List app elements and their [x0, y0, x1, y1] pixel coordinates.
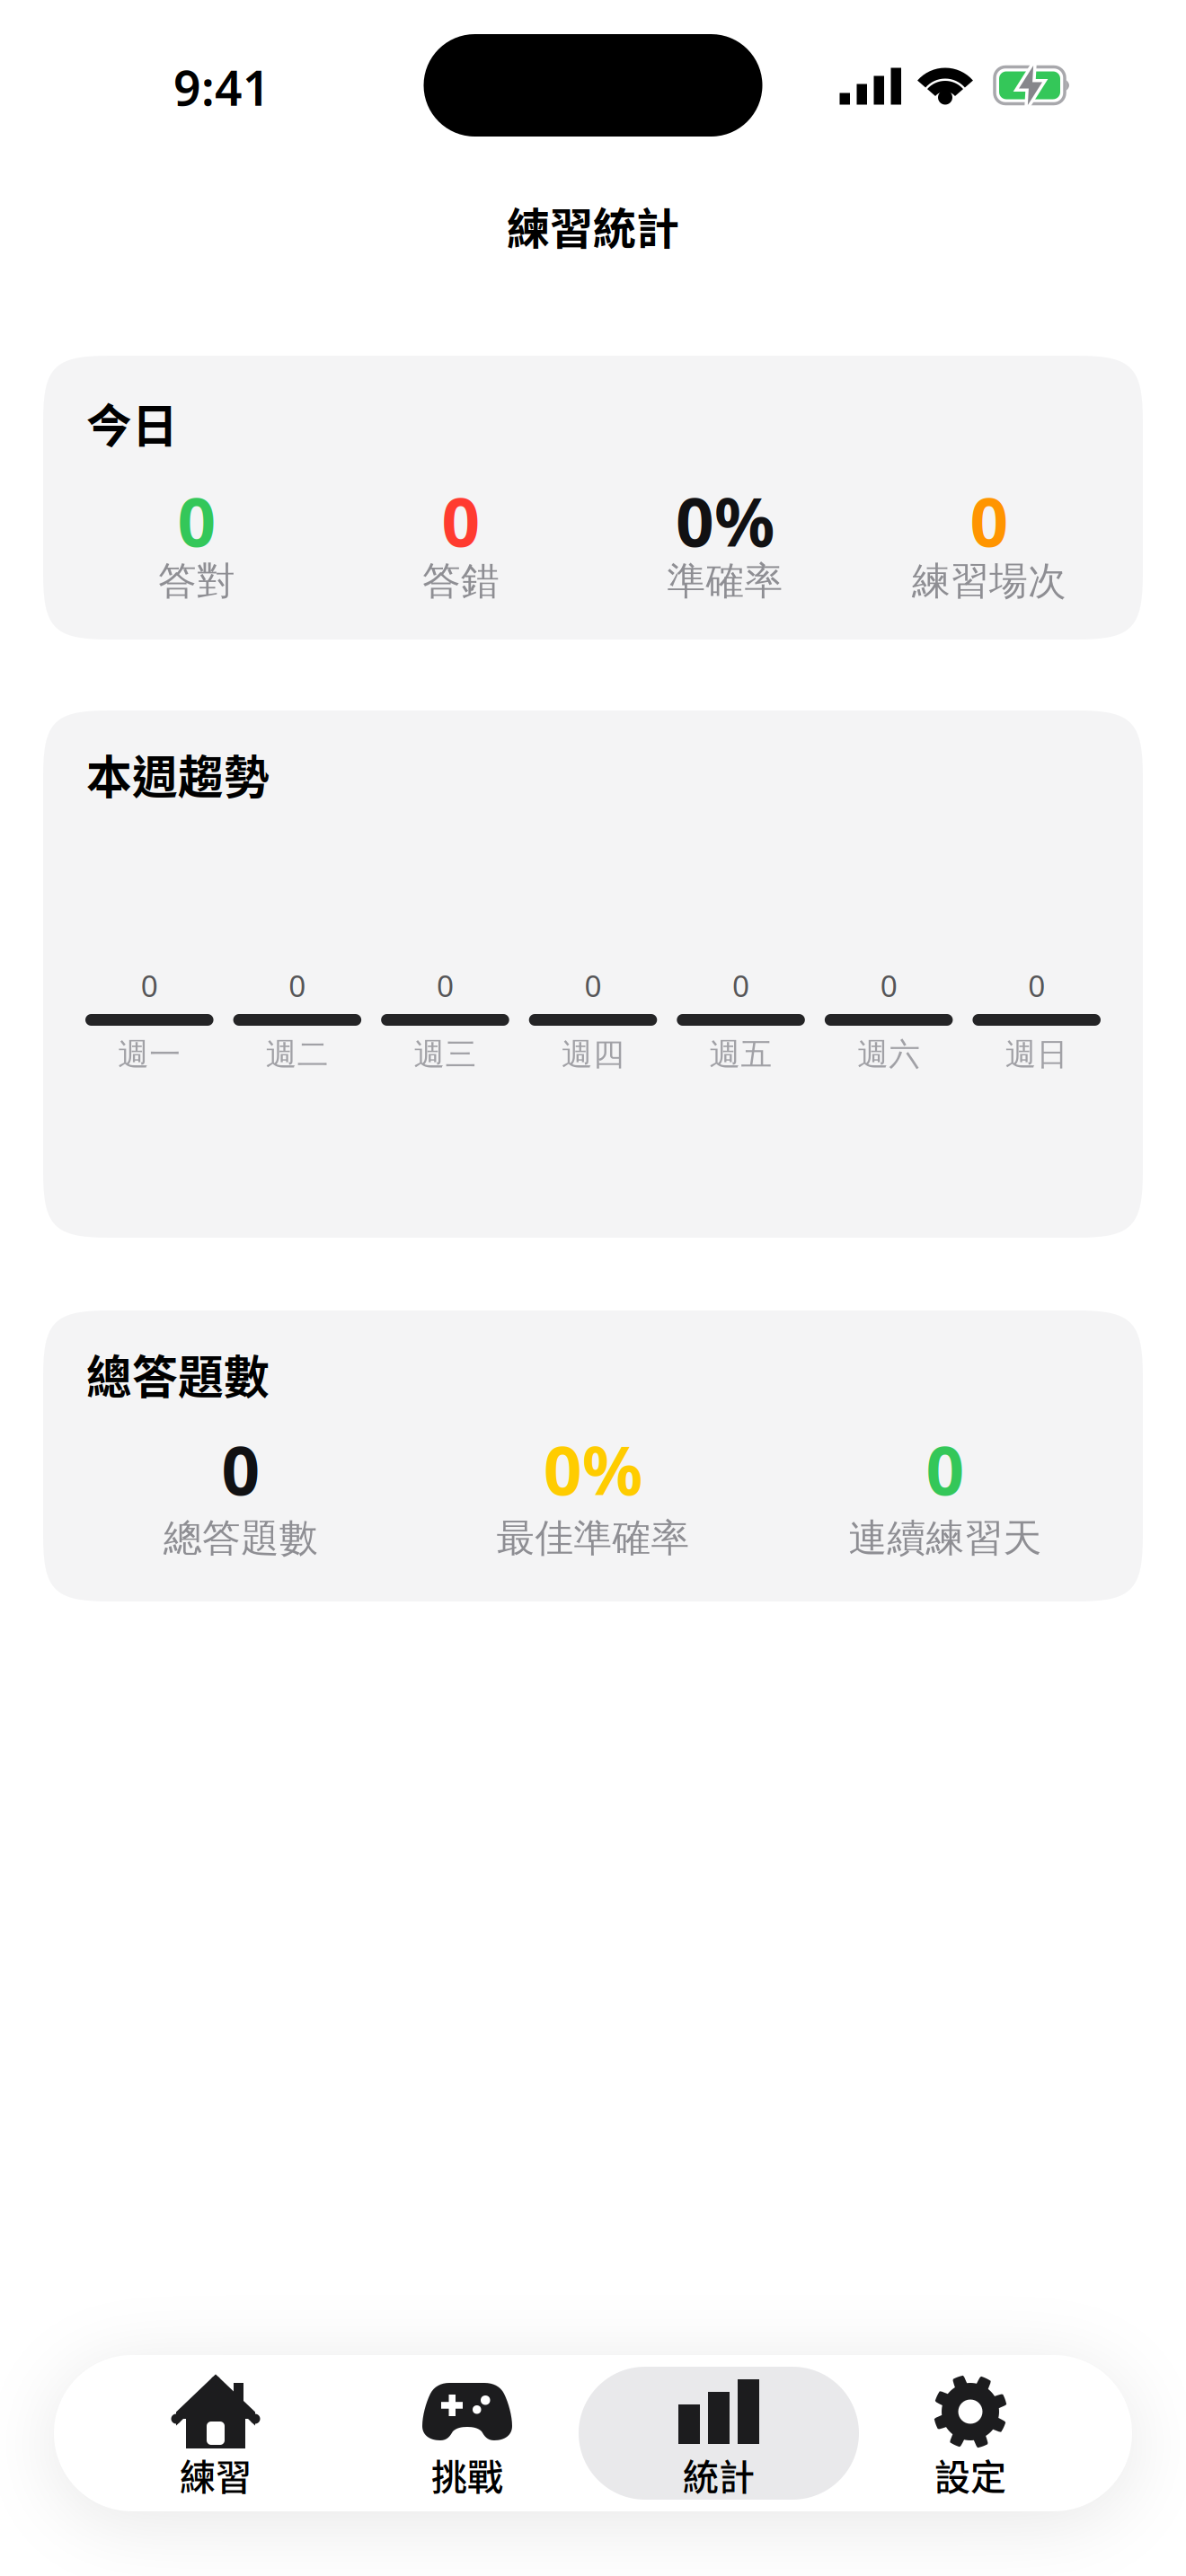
- staticText: 週四: [562, 1035, 624, 1074]
- staticText: 0: [880, 965, 897, 1005]
- staticText: 準確率: [667, 558, 783, 605]
- staticText: 週六: [857, 1035, 920, 1074]
- staticText: 9:41: [173, 55, 270, 119]
- staticText: 週五: [709, 1035, 772, 1074]
- staticText: 0: [177, 476, 216, 565]
- staticText: 挑戰: [431, 2448, 503, 2500]
- staticText: 週一: [118, 1035, 181, 1074]
- staticText: 答對: [158, 558, 235, 605]
- staticText: 0: [141, 965, 158, 1005]
- staticText: 0: [221, 1424, 260, 1514]
- button[interactable]: 挑戰: [341, 2355, 593, 2511]
- staticText: 0: [442, 476, 480, 565]
- staticText: 0: [584, 965, 602, 1005]
- button[interactable]: 統計: [593, 2355, 845, 2511]
- staticText: 週日: [1005, 1035, 1068, 1074]
- button[interactable]: 練習: [90, 2355, 341, 2511]
- staticText: 0: [970, 476, 1009, 565]
- staticText: 最佳準確率: [496, 1515, 690, 1562]
- staticText: 答錯: [422, 558, 500, 605]
- staticText: 0: [732, 965, 749, 1005]
- staticText: 0%: [544, 1424, 642, 1514]
- staticText: 設定: [934, 2448, 1006, 2500]
- staticText: 統計: [683, 2448, 755, 2500]
- staticText: 0: [437, 965, 454, 1005]
- staticText: 本週趨勢: [86, 741, 270, 807]
- staticText: 0: [1028, 965, 1045, 1005]
- staticText: 總答題數: [164, 1515, 318, 1562]
- button[interactable]: 設定: [845, 2355, 1096, 2511]
- staticText: 0%: [676, 476, 774, 565]
- staticText: 總答題數: [86, 1341, 270, 1407]
- staticText: 週二: [266, 1035, 329, 1074]
- staticText: 練習統計: [507, 194, 679, 257]
- staticText: 練習場次: [912, 558, 1067, 605]
- staticText: 0: [289, 965, 306, 1005]
- staticText: 週三: [414, 1035, 477, 1074]
- staticText: 練習: [180, 2448, 252, 2500]
- staticText: 連續練習天: [849, 1515, 1042, 1562]
- staticText: 0: [926, 1424, 965, 1514]
- staticText: 今日: [86, 390, 178, 456]
